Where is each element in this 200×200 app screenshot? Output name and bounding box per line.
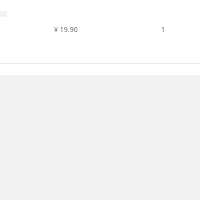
staticText: ¥ 19.90 — [54, 25, 78, 35]
staticText: 1 — [161, 25, 166, 35]
button[interactable]: ¥ 19.90 — [0, 0, 200, 62]
